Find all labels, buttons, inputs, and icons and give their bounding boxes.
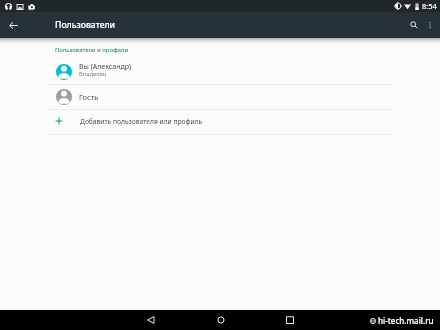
staticText: Гость	[79, 92, 99, 102]
button[interactable]: Вы (Александр)	[0, 59, 440, 84]
staticText: Владелец	[79, 70, 107, 78]
button[interactable]: Search	[406, 17, 422, 33]
staticText: hi-tech.mail.ru	[378, 315, 434, 326]
button[interactable]: Recents	[280, 310, 300, 330]
button[interactable]: More options	[422, 17, 438, 33]
staticText: Вы (Александр)	[79, 62, 132, 72]
staticText: Пользователи и профили	[55, 46, 129, 54]
staticText: 8:54	[422, 1, 437, 11]
button[interactable]: Гость	[0, 85, 440, 109]
button[interactable]: Back	[5, 17, 21, 33]
staticText: Пользователи	[55, 19, 116, 31]
button[interactable]: Back	[141, 310, 161, 330]
staticText: Добавить пользователя или профиль	[80, 117, 203, 126]
button[interactable]: Home	[211, 310, 231, 330]
button[interactable]: Добавить пользователя или профиль	[0, 110, 440, 134]
